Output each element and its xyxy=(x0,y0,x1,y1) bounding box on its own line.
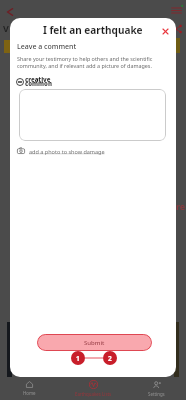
button[interactable]: 1 xyxy=(71,351,85,365)
button[interactable]: Earthquakes Lists xyxy=(59,377,127,400)
button[interactable] xyxy=(19,89,166,141)
staticText: Home xyxy=(23,390,36,396)
staticText: 2 xyxy=(108,354,112,363)
staticText: add a photo to show damage xyxy=(29,148,105,155)
button[interactable]: add a photo to show damage xyxy=(17,147,105,155)
button[interactable]: Close xyxy=(158,24,172,38)
staticText: Settings xyxy=(148,391,165,397)
button[interactable]: Submit xyxy=(37,334,152,351)
staticText: Submit xyxy=(84,339,105,347)
staticText: Earthquakes Lists xyxy=(75,391,112,397)
button[interactable]: Settings xyxy=(127,377,186,400)
button[interactable]: 2 xyxy=(103,351,117,365)
staticText: V xyxy=(3,22,9,34)
button[interactable]: Share xyxy=(171,22,185,36)
staticText: 1 xyxy=(76,354,80,363)
staticText: Leave a comment xyxy=(17,42,77,52)
button[interactable]: Home xyxy=(0,377,59,400)
staticText: re xyxy=(176,200,186,212)
staticText: Share your testimony to help others and … xyxy=(17,55,167,69)
button[interactable]: Back xyxy=(1,3,19,21)
staticText: I felt an earthquake xyxy=(43,23,143,37)
button[interactable]: Menu xyxy=(167,1,185,19)
staticText: creative xyxy=(25,76,51,84)
staticText: commons xyxy=(25,80,53,89)
